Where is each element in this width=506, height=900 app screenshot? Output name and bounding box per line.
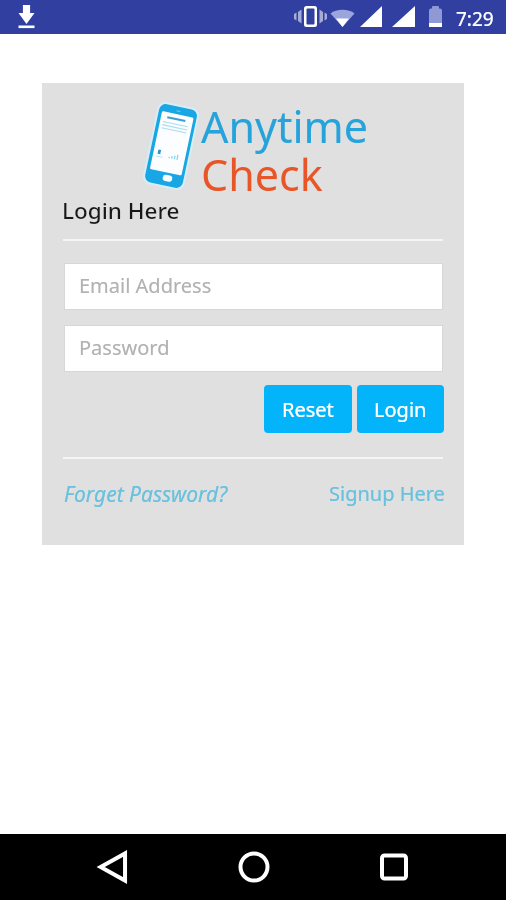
button[interactable]: Recents bbox=[358, 834, 430, 900]
button[interactable]: Back bbox=[77, 834, 149, 900]
button[interactable]: Forget Password? bbox=[64, 480, 228, 509]
button[interactable]: Signup Here bbox=[329, 480, 445, 507]
staticText: Password bbox=[79, 334, 170, 361]
staticText: Email Address bbox=[79, 272, 212, 299]
staticText: Forget Password? bbox=[64, 480, 228, 509]
staticText: Login Here bbox=[62, 195, 180, 226]
button[interactable]: Home bbox=[218, 834, 290, 900]
staticText: 7:29 bbox=[456, 6, 494, 32]
staticText: Check bbox=[201, 145, 323, 204]
button[interactable]: Login bbox=[357, 385, 444, 433]
staticText: Anytime bbox=[201, 97, 369, 156]
button[interactable]: Reset bbox=[264, 385, 352, 433]
button[interactable]: Email Address bbox=[65, 264, 442, 309]
staticText: Signup Here bbox=[329, 480, 445, 507]
button[interactable]: Password bbox=[65, 326, 442, 371]
staticText: Login bbox=[374, 396, 427, 423]
staticText: Reset bbox=[282, 396, 334, 423]
